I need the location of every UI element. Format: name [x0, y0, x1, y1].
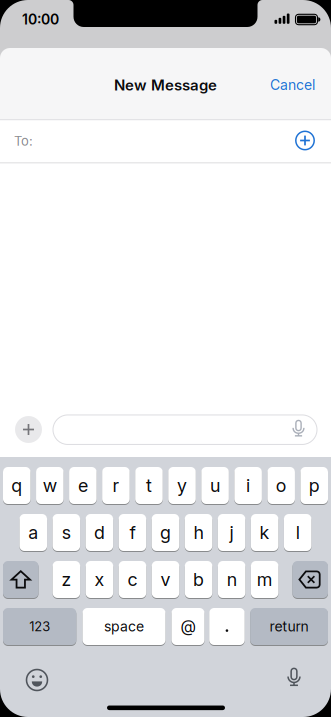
button[interactable]: Emoji [24, 667, 50, 693]
button[interactable]: c [119, 561, 146, 599]
staticText: s [62, 522, 71, 543]
staticText: d [94, 522, 105, 543]
button[interactable]: b [185, 561, 212, 599]
staticText: @ [180, 617, 195, 636]
button[interactable]: return [250, 608, 328, 646]
staticText: x [94, 569, 104, 590]
staticText: n [227, 569, 237, 590]
staticText: y [177, 475, 187, 496]
button[interactable]: z [53, 561, 80, 599]
staticText: space [104, 618, 144, 635]
button[interactable]: k [251, 514, 278, 552]
staticText: r [112, 475, 119, 496]
button[interactable]: w [36, 467, 64, 505]
button[interactable]: Add Contact [295, 130, 315, 150]
staticText: v [160, 569, 170, 590]
staticText: To: [14, 133, 33, 149]
staticText: q [11, 475, 22, 496]
staticText: f [129, 522, 135, 543]
staticText: z [61, 569, 71, 590]
staticText: j [230, 522, 234, 543]
staticText: o [276, 475, 287, 496]
button[interactable]: Numbers [3, 608, 76, 646]
button[interactable]: e [69, 467, 97, 505]
button[interactable]: h [185, 514, 212, 552]
staticText: m [257, 569, 273, 590]
button[interactable]: j [218, 514, 245, 552]
button[interactable]: d [86, 514, 113, 552]
button[interactable]: Dictation [283, 666, 305, 691]
button[interactable]: Shift [3, 561, 38, 599]
button[interactable]: p [300, 467, 328, 505]
staticText: p [309, 475, 320, 496]
staticText: u [210, 475, 220, 496]
staticText: e [78, 475, 88, 496]
button[interactable]: a [19, 514, 47, 552]
staticText: 10:00 [22, 11, 59, 28]
staticText: k [260, 522, 270, 543]
staticText: 123 [29, 619, 50, 634]
button[interactable]: s [53, 514, 80, 552]
button[interactable]: x [86, 561, 113, 599]
staticText: c [127, 569, 137, 590]
button[interactable]: q [3, 467, 31, 505]
button[interactable]: Message field [53, 415, 317, 444]
button[interactable]: at [171, 608, 204, 646]
button[interactable]: m [251, 561, 278, 599]
staticText: w [43, 475, 57, 496]
staticText: Cancel [270, 77, 315, 93]
staticText: t [146, 475, 152, 496]
button[interactable]: o [267, 467, 295, 505]
staticText: a [28, 522, 38, 543]
button[interactable]: Apps [15, 416, 42, 443]
button[interactable]: Delete [292, 561, 328, 599]
staticText: h [193, 522, 203, 543]
button[interactable]: n [218, 561, 245, 599]
button[interactable]: f [119, 514, 146, 552]
button[interactable]: Cancel [270, 77, 315, 93]
button[interactable]: l [284, 514, 311, 552]
button[interactable]: u [201, 467, 229, 505]
button[interactable]: space [82, 608, 165, 646]
button[interactable]: g [152, 514, 179, 552]
button[interactable]: v [152, 561, 179, 599]
button[interactable]: y [168, 467, 196, 505]
staticText: New Message [114, 76, 217, 94]
button[interactable]: i [234, 467, 262, 505]
staticText: return [270, 618, 309, 635]
staticText: i [246, 475, 250, 496]
staticText: l [296, 522, 300, 543]
button[interactable]: period [209, 608, 245, 646]
staticText: b [193, 569, 204, 590]
button[interactable]: r [102, 467, 130, 505]
staticText: g [160, 522, 171, 543]
button[interactable]: t [135, 467, 163, 505]
